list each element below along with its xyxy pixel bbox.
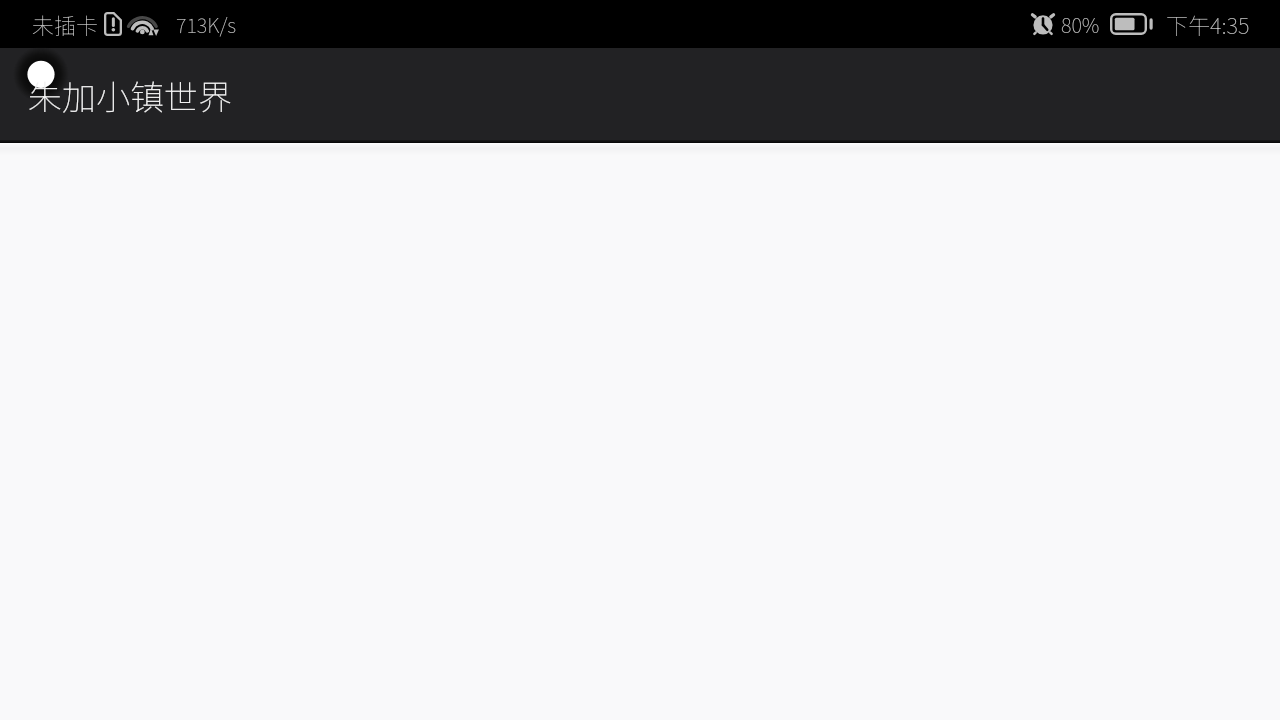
button[interactable]: 朱加小镇世界: [28, 71, 232, 120]
staticText: 未插卡: [32, 8, 99, 40]
staticText: 80%: [1061, 10, 1100, 39]
button[interactable]: App icon: [27, 60, 55, 88]
staticText: 下午4:35: [1166, 8, 1250, 40]
button[interactable]: App icon: [0, 48, 1280, 143]
staticText: 713K/s: [176, 10, 237, 39]
